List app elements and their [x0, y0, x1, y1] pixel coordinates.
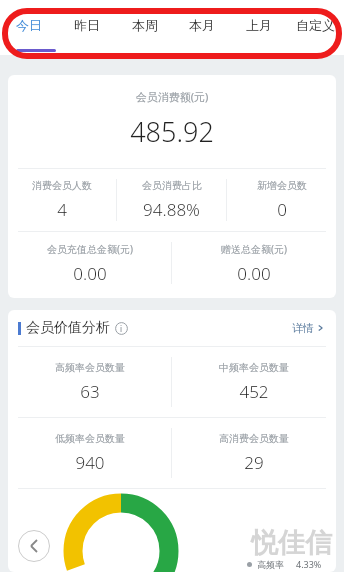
staticText: i	[120, 323, 123, 334]
staticText: 新增会员数	[257, 179, 307, 192]
staticText: 自定义	[296, 17, 335, 33]
staticText: 今日	[16, 17, 42, 33]
staticText: 高频率	[257, 559, 284, 570]
button[interactable]: 返回	[18, 530, 50, 562]
staticText: 低频率会员数量	[55, 432, 125, 445]
staticText: 0.00	[73, 262, 107, 285]
staticText: 详情	[292, 321, 314, 335]
button[interactable]: 上月	[230, 0, 287, 50]
staticText: 本月	[189, 17, 215, 33]
staticText: 会员价值分析	[26, 319, 110, 337]
staticText: 940	[75, 451, 105, 474]
staticText: 0.00	[237, 262, 271, 285]
button[interactable]: 今日	[0, 0, 58, 50]
button[interactable]: 说明	[115, 322, 128, 335]
staticText: 消费会员人数	[32, 179, 92, 192]
staticText: 高消费会员数量	[219, 432, 289, 445]
staticText: 63	[80, 380, 100, 403]
staticText: 29	[244, 451, 264, 474]
staticText: 会员消费占比	[142, 179, 202, 192]
staticText: 4.33%	[296, 558, 322, 570]
staticText: 悦佳信	[251, 526, 332, 560]
staticText: 本周	[132, 17, 158, 33]
staticText: 4	[57, 198, 67, 221]
button[interactable]: 昨日	[58, 0, 116, 50]
staticText: 485.92	[8, 113, 336, 150]
staticText: 0	[277, 198, 287, 221]
staticText: 上月	[246, 17, 272, 33]
staticText: 94.88%	[143, 198, 200, 221]
button[interactable]: 本周	[116, 0, 173, 50]
button[interactable]: 详情	[292, 321, 324, 335]
staticText: 452	[239, 380, 269, 403]
staticText: 中频率会员数量	[219, 361, 289, 374]
staticText: 高频率会员数量	[55, 361, 125, 374]
staticText: 会员消费额(元)	[8, 89, 336, 104]
button[interactable]: 自定义	[287, 0, 344, 50]
staticText: 会员充值总金额(元)	[47, 242, 133, 256]
button[interactable]: 本月	[173, 0, 230, 50]
staticText: 赠送总金额(元)	[221, 242, 287, 256]
staticText: 昨日	[74, 17, 100, 33]
